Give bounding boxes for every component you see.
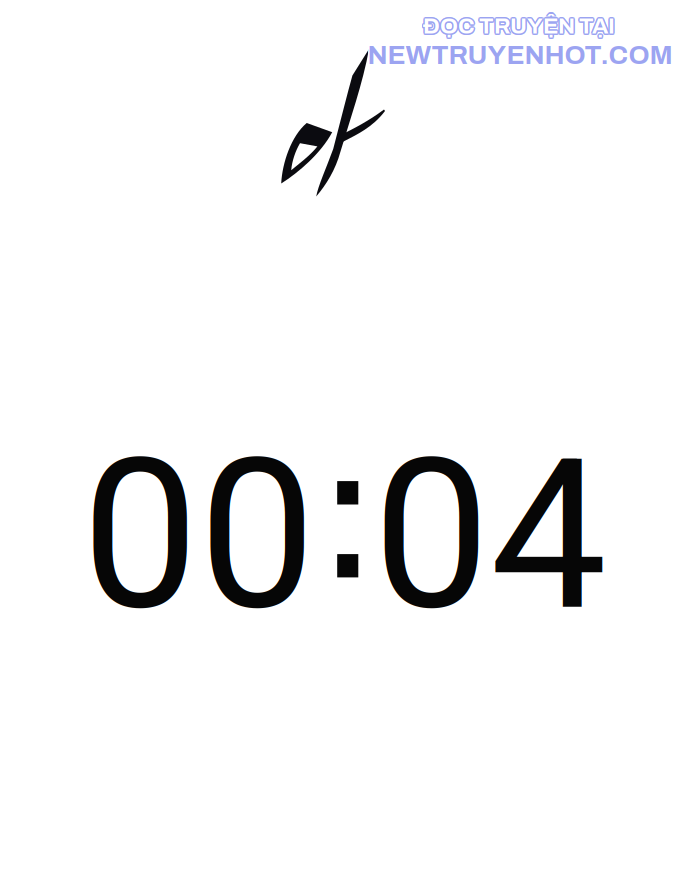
- staticText: NEWTRUYENHOT.COM: [367, 40, 672, 69]
- staticText: NEWTRUYENHOT.COM: [367, 41, 672, 70]
- staticText: ĐỌC TRUYỆN TẠI: [424, 14, 616, 38]
- staticText: ĐỌC TRUYỆN TẠI: [424, 15, 616, 39]
- button[interactable]: NEWTRUYENHOT.COM: [367, 40, 672, 69]
- staticText: ĐỌC TRUYỆN TẠI: [423, 15, 615, 40]
- staticText: NEWTRUYENHOT.COM: [367, 39, 672, 68]
- staticText: NEWTRUYENHOT.COM: [367, 42, 672, 71]
- staticText: ĐỌC TRUYỆN TẠI: [423, 12, 615, 37]
- staticText: ĐỌC TRUYỆN TẠI: [424, 13, 616, 37]
- staticText: 04: [373, 413, 607, 657]
- staticText: ĐỌC TRUYỆN TẠI: [422, 15, 614, 39]
- staticText: NEWTRUYENHOT.COM: [369, 40, 674, 69]
- staticText: NEWTRUYENHOT.COM: [366, 40, 671, 69]
- staticText: NEWTRUYENHOT.COM: [368, 41, 673, 70]
- staticText: 00: [82, 413, 316, 657]
- staticText: ĐỌC TRUYỆN TẠI: [423, 14, 615, 38]
- staticText: NEWTRUYENHOT.COM: [367, 40, 672, 69]
- staticText: ĐỌC TRUYỆN TẠI: [422, 13, 614, 37]
- staticText: ĐỌC TRUYỆN TẠI: [421, 14, 613, 38]
- staticText: NEWTRUYENHOT.COM: [368, 40, 673, 69]
